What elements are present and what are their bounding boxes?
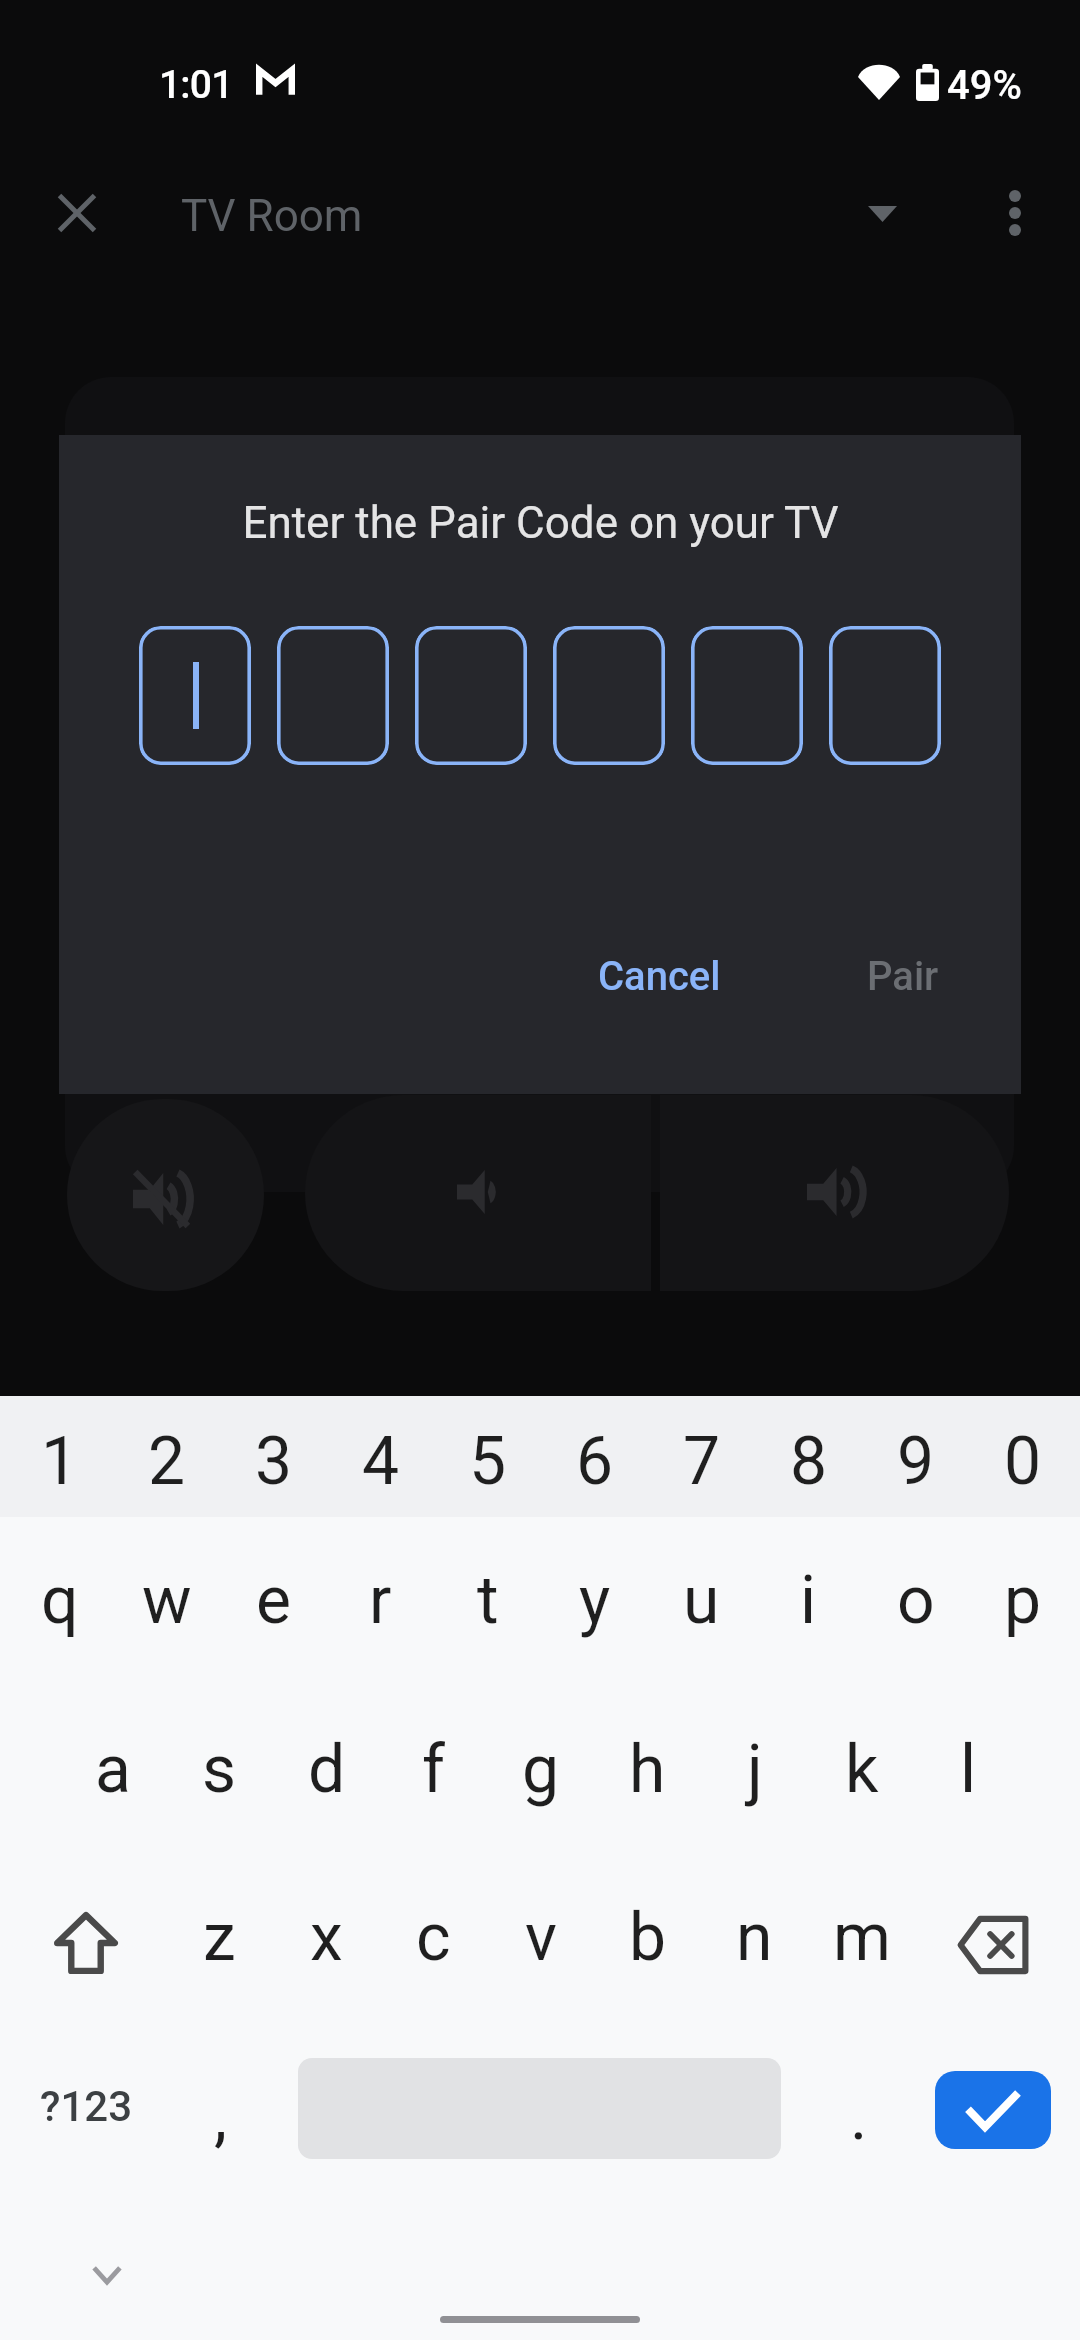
button[interactable]: e: [220, 1514, 327, 1686]
button[interactable]: ?123: [6, 2021, 166, 2193]
button[interactable]: 2: [113, 1400, 220, 1522]
button[interactable]: Done: [935, 2071, 1051, 2149]
button[interactable]: 1: [6, 1400, 113, 1522]
button[interactable]: More options: [965, 163, 1065, 263]
staticText: 49%: [947, 62, 1022, 109]
staticText: x: [310, 1899, 343, 1976]
staticText: i: [800, 1562, 817, 1639]
button[interactable]: Volume up: [660, 1095, 1009, 1291]
button[interactable]: w: [113, 1514, 220, 1686]
staticText: 2: [148, 1423, 186, 1500]
button[interactable]: s: [166, 1685, 273, 1853]
staticText: 5: [469, 1423, 507, 1500]
staticText: 1: [41, 1423, 79, 1500]
staticText: t: [477, 1562, 499, 1639]
button[interactable]: Mute: [67, 1099, 264, 1291]
staticText: a: [95, 1731, 131, 1808]
staticText: b: [629, 1899, 667, 1976]
staticText: o: [897, 1562, 935, 1639]
staticText: n: [736, 1899, 773, 1976]
button[interactable]: p: [969, 1514, 1076, 1686]
button[interactable]: f: [380, 1685, 487, 1853]
button[interactable]: 4: [327, 1400, 434, 1522]
button[interactable]: t: [434, 1514, 541, 1686]
button[interactable]: u: [648, 1514, 755, 1686]
button[interactable]: Shift: [6, 1853, 166, 2021]
staticText: 4: [362, 1423, 400, 1500]
button[interactable]: j: [701, 1685, 808, 1853]
button[interactable]: q: [6, 1514, 113, 1686]
button[interactable]: .: [804, 2021, 914, 2193]
staticText: j: [747, 1731, 763, 1808]
staticText: e: [256, 1562, 291, 1639]
staticText: m: [833, 1899, 891, 1976]
staticText: q: [41, 1562, 79, 1639]
staticText: s: [202, 1731, 237, 1808]
button[interactable]: i: [755, 1514, 862, 1686]
button[interactable]: 5: [434, 1400, 541, 1522]
button[interactable]: Pair code digit 1: [139, 626, 251, 765]
staticText: 3: [255, 1423, 293, 1500]
button[interactable]: n: [701, 1853, 808, 2021]
button[interactable]: y: [541, 1514, 648, 1686]
button[interactable]: d: [273, 1685, 380, 1853]
button[interactable]: ,: [165, 2021, 275, 2193]
button[interactable]: Pair: [839, 935, 967, 1018]
button[interactable]: Pair code digit 6: [829, 626, 941, 765]
staticText: l: [960, 1731, 977, 1808]
button[interactable]: c: [380, 1853, 487, 2021]
button[interactable]: k: [808, 1685, 915, 1853]
staticText: TV Room: [181, 190, 363, 242]
staticText: z: [203, 1899, 236, 1976]
staticText: w: [142, 1562, 192, 1639]
staticText: h: [629, 1731, 666, 1808]
staticText: u: [683, 1562, 720, 1639]
button[interactable]: r: [327, 1514, 434, 1686]
button[interactable]: Hide keyboard: [72, 2240, 142, 2310]
button[interactable]: Pair code digit 4: [553, 626, 665, 765]
button[interactable]: a: [59, 1685, 166, 1853]
staticText: Cancel: [598, 953, 721, 1000]
button[interactable]: 9: [862, 1400, 969, 1522]
button[interactable]: v: [487, 1853, 594, 2021]
button[interactable]: Pair code digit 3: [415, 626, 527, 765]
staticText: 9: [897, 1423, 935, 1500]
button[interactable]: h: [594, 1685, 701, 1853]
button[interactable]: Backspace: [913, 1853, 1073, 2021]
staticText: Enter the Pair Code on your TV: [242, 497, 839, 549]
staticText: 1:01: [159, 62, 233, 108]
button[interactable]: Close: [27, 163, 127, 263]
staticText: ?123: [40, 2082, 133, 2131]
button[interactable]: Pair code digit 5: [691, 626, 803, 765]
button[interactable]: 3: [220, 1400, 327, 1522]
staticText: g: [522, 1731, 560, 1808]
button[interactable]: Volume down: [305, 1095, 651, 1291]
staticText: r: [369, 1562, 392, 1639]
staticText: 7: [683, 1423, 721, 1500]
button[interactable]: m: [808, 1853, 915, 2021]
staticText: 8: [790, 1423, 828, 1500]
staticText: Pair: [867, 953, 939, 1000]
button[interactable]: Cancel: [570, 935, 749, 1018]
staticText: y: [579, 1562, 611, 1639]
staticText: k: [845, 1731, 879, 1808]
button[interactable]: x: [273, 1853, 380, 2021]
button[interactable]: b: [594, 1853, 701, 2021]
staticText: p: [1004, 1562, 1042, 1639]
button[interactable]: 6: [541, 1400, 648, 1522]
button[interactable]: o: [862, 1514, 969, 1686]
staticText: v: [525, 1899, 557, 1976]
button[interactable]: 7: [648, 1400, 755, 1522]
staticText: f: [422, 1731, 445, 1808]
button[interactable]: Pair code digit 2: [277, 626, 389, 765]
button[interactable]: TV Room: [160, 163, 930, 263]
button[interactable]: 0: [969, 1400, 1076, 1522]
button[interactable]: g: [487, 1685, 594, 1853]
staticText: ,: [214, 2078, 227, 2155]
staticText: 6: [576, 1423, 614, 1500]
button[interactable]: l: [915, 1685, 1022, 1853]
button[interactable]: z: [166, 1853, 273, 2021]
staticText: .: [850, 2078, 868, 2155]
button[interactable]: 8: [755, 1400, 862, 1522]
